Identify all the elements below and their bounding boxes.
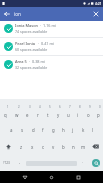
button[interactable]: 7 [63, 104, 73, 121]
staticText: t [47, 112, 49, 118]
staticText: s [21, 127, 24, 133]
button[interactable]: s [17, 121, 28, 138]
staticText: i [77, 112, 79, 118]
button[interactable]: b [58, 138, 68, 155]
button[interactable]: h [58, 121, 68, 138]
staticText: k [82, 127, 85, 133]
button[interactable]: f [38, 121, 48, 138]
staticText: d [32, 127, 35, 133]
button[interactable]: Ionia Mason [0, 20, 103, 37]
button[interactable]: l [88, 121, 98, 138]
staticText: · 1.16 mi [38, 23, 57, 28]
staticText: x [31, 144, 34, 150]
staticText: 74 spaces available [15, 29, 48, 34]
staticText: p [97, 112, 100, 118]
button[interactable]: Search [92, 159, 100, 167]
button[interactable]: v [48, 138, 58, 155]
button[interactable]: Recent apps [72, 171, 85, 183]
staticText: 8 [79, 105, 81, 109]
staticText: Ionia Mason [15, 23, 38, 28]
staticText: Area 5 [15, 59, 27, 64]
button[interactable]: Home [45, 171, 58, 183]
staticText: 7 [69, 105, 71, 109]
staticText: 32 spaces available [15, 65, 48, 70]
button[interactable]: Clear search [89, 7, 103, 21]
button[interactable]: m [78, 138, 88, 155]
staticText: r [37, 112, 39, 118]
button[interactable]: Shift [0, 138, 16, 155]
button[interactable]: c [38, 138, 48, 155]
staticText: b [62, 144, 65, 150]
staticText: q [4, 112, 7, 118]
button[interactable]: Back [18, 171, 31, 183]
staticText: ?123 [3, 161, 10, 165]
button[interactable]: g [48, 121, 58, 138]
staticText: 2 [18, 105, 20, 109]
staticText: . [82, 159, 84, 165]
button[interactable]: 5 [43, 104, 53, 121]
staticText: · 0.38 mi [27, 59, 46, 64]
staticText: 1 [7, 105, 9, 109]
staticText: c [42, 144, 45, 150]
button[interactable]: 6 [53, 104, 63, 121]
staticText: h [62, 127, 65, 133]
button[interactable]: 0 [93, 104, 103, 121]
button[interactable]: ?123 [0, 155, 14, 171]
staticText: 6 [59, 105, 61, 109]
staticText: a [10, 127, 13, 133]
staticText: u [67, 112, 70, 118]
button[interactable]: 4 [33, 104, 43, 121]
staticText: 4:21 [95, 1, 102, 6]
button[interactable]: 2 [11, 104, 22, 121]
button[interactable]: 1 [0, 104, 11, 121]
staticText: Pearl Ionia [15, 41, 36, 46]
button[interactable]: Pearl Ionia [0, 38, 103, 55]
staticText: 5 [49, 105, 51, 109]
button[interactable]: , [14, 155, 26, 171]
button[interactable]: Backspace [88, 138, 103, 155]
staticText: y [57, 112, 60, 118]
staticText: 0 [99, 105, 101, 109]
staticText: v [52, 144, 55, 150]
button[interactable]: x [27, 138, 38, 155]
staticText: 60 spaces available [15, 47, 48, 52]
staticText: m [81, 144, 86, 150]
button[interactable]: a [6, 121, 17, 138]
staticText: g [52, 127, 55, 133]
staticText: z [20, 144, 23, 150]
button[interactable]: 8 [73, 104, 83, 121]
button[interactable]: 3 [22, 104, 33, 121]
button[interactable]: z [16, 138, 27, 155]
staticText: 9 [89, 105, 91, 109]
staticText: · 0.41 mi [36, 41, 55, 46]
button[interactable]: 9 [83, 104, 93, 121]
staticText: o [87, 112, 90, 118]
staticText: f [42, 127, 44, 133]
staticText: 3 [29, 105, 31, 109]
button[interactable]: Back [0, 7, 14, 21]
button[interactable]: k [78, 121, 88, 138]
staticText: , [19, 159, 21, 165]
staticText: j [72, 127, 74, 133]
staticText: 4 [39, 105, 41, 109]
staticText: l [92, 127, 94, 133]
staticText: ion [14, 11, 21, 17]
button[interactable]: Area 5 [0, 56, 103, 73]
button[interactable]: j [68, 121, 78, 138]
staticText: w [15, 112, 19, 118]
button[interactable]: d [28, 121, 38, 138]
button[interactable]: n [68, 138, 78, 155]
staticText: n [72, 144, 75, 150]
staticText: e [26, 112, 29, 118]
